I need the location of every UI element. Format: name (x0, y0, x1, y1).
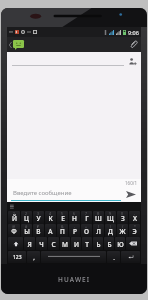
staticText: . (113, 254, 115, 262)
staticText: Ы (24, 227, 30, 236)
button[interactable]: 4 (45, 211, 56, 224)
button[interactable]: - (69, 224, 80, 237)
staticText: С (51, 240, 56, 249)
staticText: HUAWEI (58, 275, 91, 284)
staticText: 0 (121, 211, 124, 216)
staticText: П (60, 227, 65, 236)
button[interactable]: Ь (93, 237, 103, 250)
staticText: Введите сообщение (13, 189, 72, 197)
button[interactable]: 6 (69, 211, 80, 224)
button[interactable]: Введите сообщение (11, 186, 121, 202)
staticText: 9 (109, 211, 112, 216)
button[interactable]: - (129, 211, 140, 224)
button[interactable]: @ (8, 224, 20, 237)
button[interactable]: Send (124, 188, 138, 201)
staticText: _ (50, 224, 52, 229)
staticText: Б (107, 240, 112, 249)
staticText: Г (85, 214, 89, 223)
staticText: Д (108, 227, 113, 236)
button[interactable]: Add recipient (128, 57, 141, 66)
button[interactable]: ) (105, 224, 116, 237)
staticText: Х (133, 214, 137, 223)
button[interactable]: Symbols (8, 251, 26, 263)
button[interactable]: 8 (93, 211, 104, 224)
staticText: / (122, 224, 124, 229)
staticText: 123 (13, 254, 22, 261)
staticText: ) (110, 224, 112, 229)
staticText: Ь (96, 240, 101, 249)
button[interactable]: ₽ (33, 224, 44, 237)
button[interactable]: 0 (117, 211, 128, 224)
button[interactable]: # (21, 224, 32, 237)
staticText: З (121, 214, 125, 223)
staticText: Э (132, 227, 137, 236)
staticText: Ф (11, 227, 17, 236)
button[interactable]: + (81, 224, 92, 237)
staticText: ( (98, 224, 100, 229)
staticText: Я (27, 240, 32, 249)
button[interactable]: / (117, 224, 128, 237)
staticText: 160/1 (125, 180, 137, 186)
button[interactable]: 3 (33, 211, 44, 224)
button[interactable]: 5 (57, 211, 68, 224)
button[interactable]: Т (82, 237, 92, 250)
staticText: Ш (95, 214, 102, 223)
staticText: Й (12, 214, 17, 223)
button[interactable]: . (107, 251, 120, 263)
button[interactable]: Ю (115, 237, 125, 250)
button[interactable]: Backspace (126, 237, 140, 250)
staticText: Н (72, 214, 77, 223)
button[interactable]: Attach (126, 40, 141, 49)
button[interactable]: М (60, 237, 70, 250)
button[interactable]: 1 (8, 211, 20, 224)
staticText: 8 (97, 211, 100, 216)
staticText: Ц (24, 214, 29, 223)
button[interactable]: Add recipient (7, 52, 141, 70)
staticText: 4 (49, 211, 52, 216)
staticText: 2 (25, 211, 28, 216)
button[interactable]: Б (104, 237, 114, 250)
button[interactable]: _ (45, 224, 56, 237)
staticText: В (36, 227, 41, 236)
staticText: ₽ (37, 224, 40, 229)
staticText: М (62, 240, 68, 249)
staticText: Щ (107, 214, 114, 223)
staticText: @ (12, 224, 16, 229)
staticText: Ж (119, 227, 126, 236)
staticText: , (33, 254, 35, 262)
staticText: 3 (37, 211, 40, 216)
staticText: - (74, 224, 76, 229)
staticText: Е (61, 214, 65, 223)
button[interactable]: 7 (81, 211, 92, 224)
staticText: 9:06 (128, 29, 139, 36)
button[interactable]: 2 (21, 211, 32, 224)
staticText: О (84, 227, 89, 236)
staticText: А (48, 227, 53, 236)
button[interactable]: ( (93, 224, 104, 237)
staticText: И (74, 240, 79, 249)
staticText: 7 (85, 211, 88, 216)
button[interactable]: & (57, 224, 68, 237)
button[interactable]: С (48, 237, 59, 250)
staticText: Л (96, 227, 101, 236)
button[interactable]: 9 (105, 211, 116, 224)
button[interactable]: * (129, 224, 140, 237)
button[interactable]: Я (24, 237, 35, 250)
button[interactable]: Shift (8, 237, 23, 250)
staticText: & (61, 224, 64, 229)
staticText: Т (85, 240, 89, 249)
button[interactable]: И (71, 237, 81, 250)
button[interactable]: Back to Messaging (7, 40, 27, 50)
staticText: У (36, 214, 41, 223)
staticText: К (48, 214, 53, 223)
button[interactable]: Space (41, 251, 106, 263)
staticText: Р (73, 227, 77, 236)
staticText: # (25, 224, 28, 229)
staticText: Ю (117, 240, 124, 249)
button[interactable]: , (27, 251, 40, 263)
staticText: Ч (39, 240, 44, 249)
button[interactable]: Ч (36, 237, 47, 250)
button[interactable]: Enter (121, 251, 140, 263)
staticText: 1 (13, 211, 16, 216)
staticText: + (85, 224, 88, 229)
